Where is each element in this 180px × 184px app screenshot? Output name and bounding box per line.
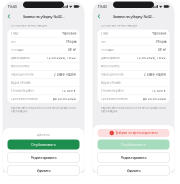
staticText: Срок выполнения [101,97,128,101]
staticText: 2 раза в неделю [54,73,76,76]
staticText: Заявка станет видна исполнителям сразу п… [100,106,165,113]
staticText: Исполнитель [101,64,119,68]
staticText: Периодичность [11,73,33,76]
staticText: ! [111,131,112,135]
staticText: Черновик [152,32,166,35]
staticText: Дата создания [11,56,30,60]
staticText: Адрес объекта [11,81,30,84]
staticText: Тип [101,40,106,43]
staticText: 48 м² [158,48,166,51]
staticText: Удалить [126,168,140,173]
staticText: Статус [101,32,108,35]
staticText: Исполнитель [11,64,29,68]
staticText: Стоимость работ [11,89,34,92]
staticText: Уборка [66,40,76,43]
button[interactable]: Опубликовать [7,139,79,149]
staticText: Срок выполнения [11,97,38,101]
staticText: Тип [11,40,16,43]
button[interactable]: Редактировать [7,152,79,162]
staticText: Площадь [11,48,23,51]
staticText: 48 м² [68,48,76,51]
staticText: Удалить [36,168,50,173]
staticText: Стоимость работ [101,89,124,92]
staticText: Заявка на уборку №42… [112,14,154,19]
button[interactable]: Редактировать [97,152,169,162]
staticText: до 20.03.2024 [53,97,76,101]
staticText: Адрес объекта [101,81,120,84]
staticText: Черновик [62,32,76,35]
staticText: 12.03.2024, 14:22 [137,56,166,60]
staticText: Уборка [156,40,166,43]
staticText: Заявка на уборку №42… [22,14,64,19]
button[interactable]: Назад [5,12,12,21]
button[interactable]: Назад [95,12,102,21]
staticText: 12 400 ₽ [62,89,76,92]
staticText: Заявка станет видна исполнителям сразу п… [10,106,75,113]
staticText: Действия [37,133,50,136]
staticText: 12 400 ₽ [152,89,166,92]
button[interactable]: Удалить [97,165,169,175]
staticText: Редактировать [30,155,56,160]
staticText: до 20.03.2024 [143,97,166,101]
staticText: Опубликовать [31,142,56,147]
staticText: 12.03.2024, 14:22 [47,56,76,60]
staticText: Площадь [101,48,113,51]
staticText: Редактировать [120,155,146,160]
button[interactable]: Опубликовать [97,139,169,149]
staticText: 19:43 [7,4,16,9]
staticText: 19:43 [97,4,106,9]
staticText: ОСНОВНАЯ ИНФОРМАЦИЯ [100,24,137,27]
staticText: ОСНОВНАЯ ИНФОРМАЦИЯ [10,24,47,27]
staticText: 2 раза в неделю [144,73,166,76]
staticText: Опубликовать [121,142,146,147]
staticText: Требуется интернет-соединение [115,131,157,135]
staticText: Статус [11,32,18,35]
staticText: Дата создания [101,56,120,60]
button[interactable]: Удалить [7,165,79,175]
staticText: Периодичность [101,73,123,76]
